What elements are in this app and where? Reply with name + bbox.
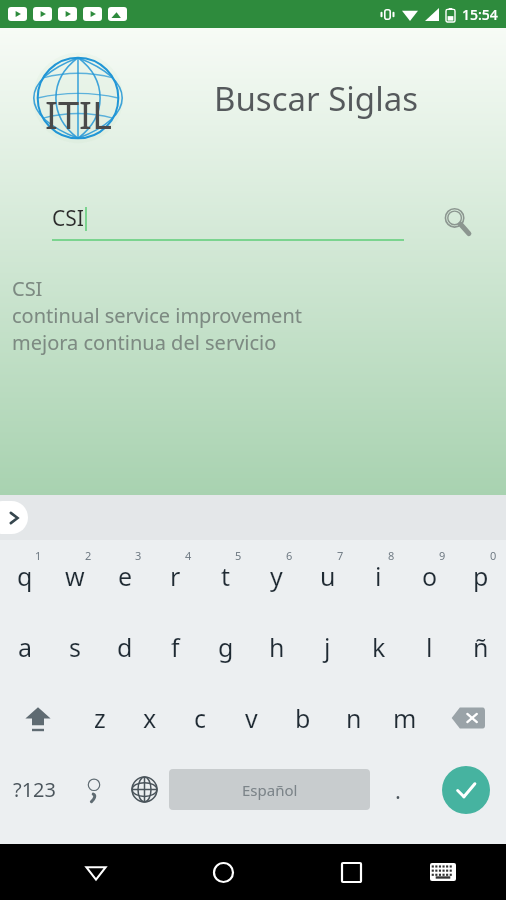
staticText: y xyxy=(270,559,283,593)
button[interactable]: z xyxy=(75,682,125,753)
button[interactable]: b xyxy=(277,682,328,753)
staticText: c xyxy=(194,701,207,735)
button[interactable]: g xyxy=(200,611,251,682)
staticText: s xyxy=(69,630,81,664)
staticText: w xyxy=(65,559,85,593)
staticText: 6 xyxy=(286,548,293,563)
staticText: ITIL xyxy=(45,88,112,140)
staticText: l xyxy=(426,630,433,664)
button[interactable]: p xyxy=(455,540,506,611)
button[interactable]: e xyxy=(100,540,150,611)
button[interactable]: . xyxy=(370,753,425,826)
button[interactable]: o xyxy=(404,540,455,611)
staticText: 8 xyxy=(388,548,395,563)
button[interactable]: v xyxy=(226,682,277,753)
staticText: 9 xyxy=(439,548,446,563)
staticText: ?123 xyxy=(13,776,56,803)
staticText: o xyxy=(422,559,438,593)
staticText: e xyxy=(118,559,133,593)
staticText: . xyxy=(395,775,401,805)
staticText: 1 xyxy=(35,548,42,563)
button[interactable]: Mayúsculas xyxy=(0,682,75,753)
button[interactable]: Inicio xyxy=(190,844,257,900)
staticText: a xyxy=(18,630,33,664)
button[interactable]: f xyxy=(150,611,200,682)
staticText: 7 xyxy=(337,548,344,563)
button[interactable]: x xyxy=(125,682,175,753)
staticText: Buscar Siglas xyxy=(214,76,418,121)
staticText: x xyxy=(143,701,157,735)
staticText: ñ xyxy=(473,630,489,664)
staticText: CSI xyxy=(52,204,84,233)
staticText: 15:54 xyxy=(462,5,498,24)
staticText: g xyxy=(218,630,234,664)
button[interactable]: c xyxy=(175,682,226,753)
button[interactable]: j xyxy=(302,611,353,682)
staticText: k xyxy=(372,630,386,664)
staticText: mejora continua del servicio xyxy=(12,329,277,356)
button[interactable]: Cambiar idioma xyxy=(119,753,169,826)
button[interactable]: i xyxy=(353,540,404,611)
button[interactable]: Teclado xyxy=(409,844,476,900)
button[interactable]: Borrar xyxy=(430,682,506,753)
button[interactable]: Aceptar xyxy=(425,753,506,826)
button[interactable]: l xyxy=(404,611,455,682)
staticText: 5 xyxy=(235,548,242,563)
staticText: d xyxy=(117,630,133,664)
button[interactable]: u xyxy=(302,540,353,611)
staticText: h xyxy=(269,630,285,664)
button[interactable]: Español xyxy=(169,769,370,810)
button[interactable]: n xyxy=(328,682,379,753)
button[interactable]: h xyxy=(251,611,302,682)
staticText: 4 xyxy=(185,548,192,563)
staticText: continual service improvement xyxy=(12,302,302,329)
staticText: q xyxy=(17,559,33,593)
button[interactable]: d xyxy=(100,611,150,682)
staticText: p xyxy=(473,559,489,593)
button[interactable]: ñ xyxy=(455,611,506,682)
button[interactable]: Más sugerencias xyxy=(0,501,28,534)
button[interactable]: t xyxy=(200,540,251,611)
staticText: u xyxy=(320,559,336,593)
staticText: v xyxy=(245,701,258,735)
button[interactable]: a xyxy=(0,611,50,682)
staticText: r xyxy=(170,559,181,593)
staticText: j xyxy=(324,630,331,664)
staticText: t xyxy=(221,559,231,593)
button[interactable]: w xyxy=(50,540,100,611)
staticText: z xyxy=(94,701,106,735)
staticText: 2 xyxy=(85,548,92,563)
staticText: m xyxy=(393,701,417,735)
staticText: i xyxy=(375,559,382,593)
button[interactable]: ?123 xyxy=(0,753,69,826)
button[interactable]: Buscar xyxy=(434,198,482,246)
button[interactable]: y xyxy=(251,540,302,611)
staticText: CSI xyxy=(12,275,43,302)
staticText: Español xyxy=(242,780,298,800)
button[interactable]: m xyxy=(379,682,430,753)
button[interactable]: Recientes xyxy=(318,844,385,900)
button[interactable]: Atrás xyxy=(62,844,129,900)
staticText: 0 xyxy=(490,548,497,563)
button[interactable]: r xyxy=(150,540,200,611)
button[interactable]: q xyxy=(0,540,50,611)
staticText: 3 xyxy=(135,548,142,563)
staticText: b xyxy=(295,701,311,735)
button[interactable]: k xyxy=(353,611,404,682)
staticText: f xyxy=(171,630,180,664)
button[interactable]: Emoji y coma xyxy=(69,753,119,826)
staticText: n xyxy=(346,701,362,735)
button[interactable]: s xyxy=(50,611,100,682)
